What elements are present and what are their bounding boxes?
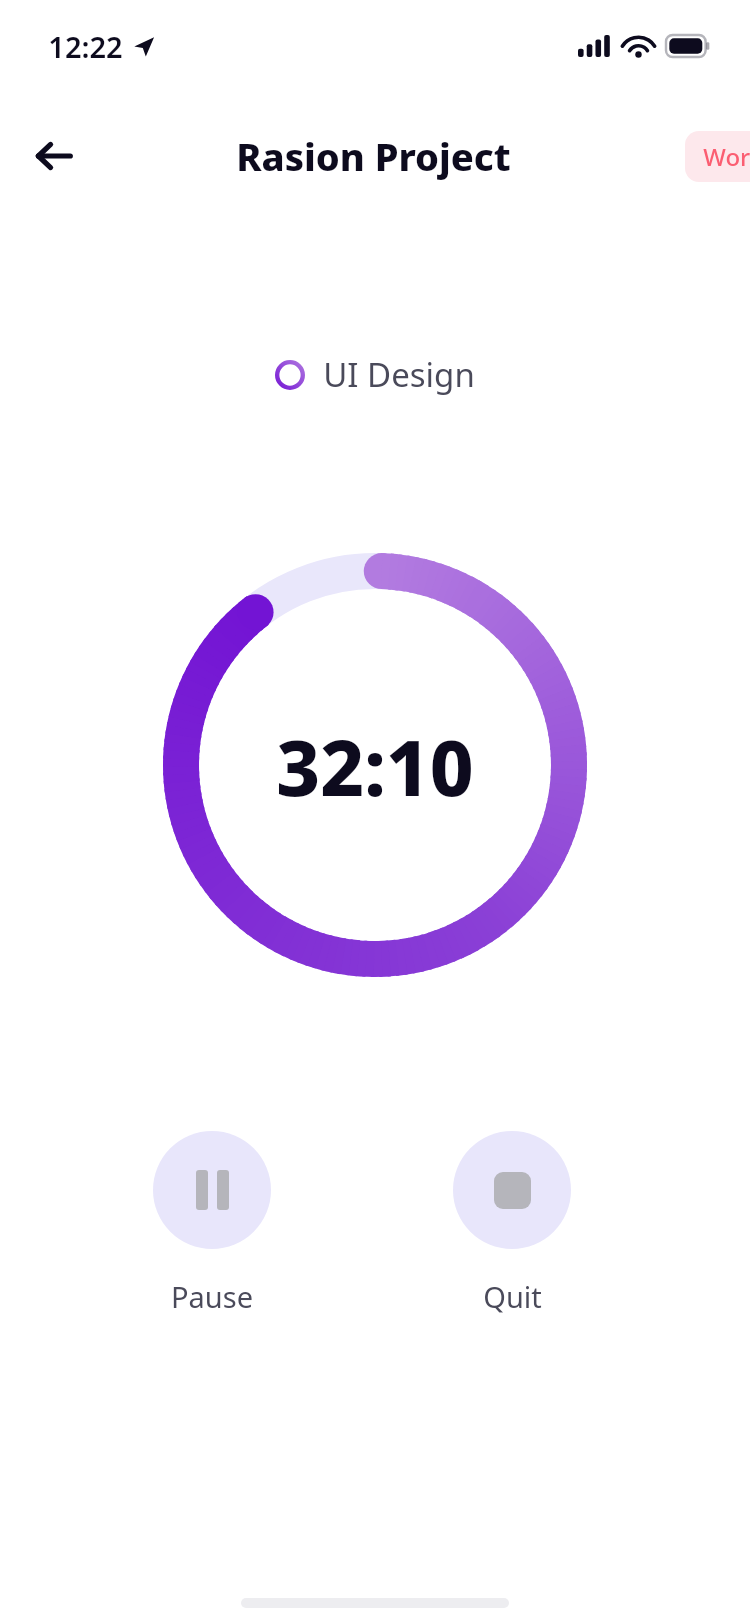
staticText: Pause bbox=[171, 1277, 253, 1316]
button[interactable]: Back bbox=[22, 124, 86, 188]
staticText: Rasion Project bbox=[236, 130, 511, 182]
button[interactable]: Pause bbox=[153, 1131, 271, 1316]
staticText: 32:10 bbox=[276, 715, 474, 819]
staticText: Work bbox=[703, 140, 750, 173]
staticText: 12:22 bbox=[48, 27, 123, 66]
button[interactable]: Work bbox=[685, 131, 750, 182]
staticText: UI Design bbox=[323, 352, 475, 397]
staticText: Quit bbox=[483, 1277, 542, 1316]
button[interactable]: Quit bbox=[453, 1131, 571, 1316]
